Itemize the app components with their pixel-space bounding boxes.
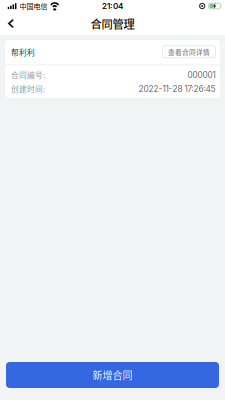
staticText: 2022-11-28 17:26:45: [138, 84, 215, 94]
button[interactable]: Back: [0, 12, 22, 35]
staticText: 帮利利: [11, 47, 35, 58]
button[interactable]: 查看合同详情: [162, 46, 215, 59]
staticText: 新增合同: [92, 368, 132, 382]
staticText: 创建时间:: [11, 83, 45, 95]
staticText: 查看合同详情: [168, 47, 210, 57]
staticText: 合同管理: [90, 15, 134, 32]
staticText: 合同编号:: [11, 69, 45, 81]
staticText: 中国电信: [20, 1, 48, 11]
button[interactable]: 新增合同: [6, 362, 219, 388]
staticText: 21:04: [102, 1, 123, 11]
staticText: 000001: [187, 70, 215, 80]
